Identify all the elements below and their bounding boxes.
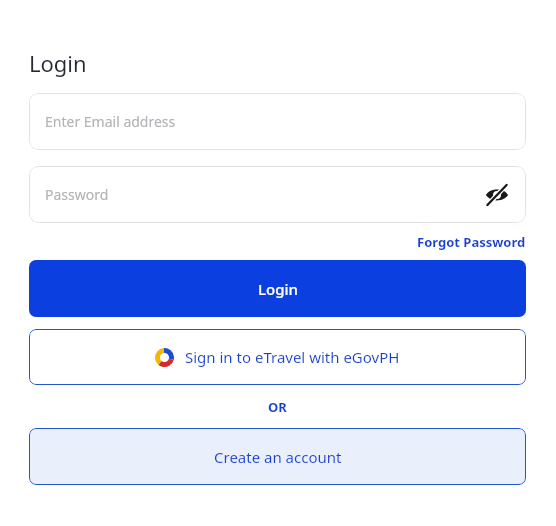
button[interactable]: Login	[29, 260, 526, 317]
staticText: Create an account	[214, 447, 342, 467]
button[interactable]: Show password	[480, 178, 514, 212]
button[interactable]: Enter Email address	[29, 93, 526, 150]
button[interactable]: Forgot Password	[417, 233, 526, 251]
button[interactable]: Password	[29, 166, 526, 223]
staticText: Login	[258, 279, 298, 299]
staticText: OR	[268, 398, 287, 416]
button[interactable]: Create an account	[29, 428, 526, 485]
staticText: Enter Email address	[45, 112, 176, 131]
button[interactable]: Sign in to eTravel with eGovPH	[29, 329, 526, 385]
staticText: Password	[45, 185, 109, 204]
staticText: Sign in to eTravel with eGovPH	[185, 347, 400, 367]
staticText: Forgot Password	[417, 233, 526, 251]
staticText: Login	[29, 48, 87, 78]
